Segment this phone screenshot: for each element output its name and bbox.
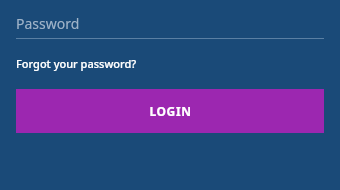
staticText: Password (16, 14, 80, 33)
staticText: Forgot your password? (16, 56, 137, 71)
button[interactable]: LOGIN (16, 89, 324, 133)
button[interactable]: Password (16, 14, 324, 39)
staticText: LOGIN (149, 103, 192, 119)
button[interactable]: Forgot your password? (16, 56, 137, 71)
